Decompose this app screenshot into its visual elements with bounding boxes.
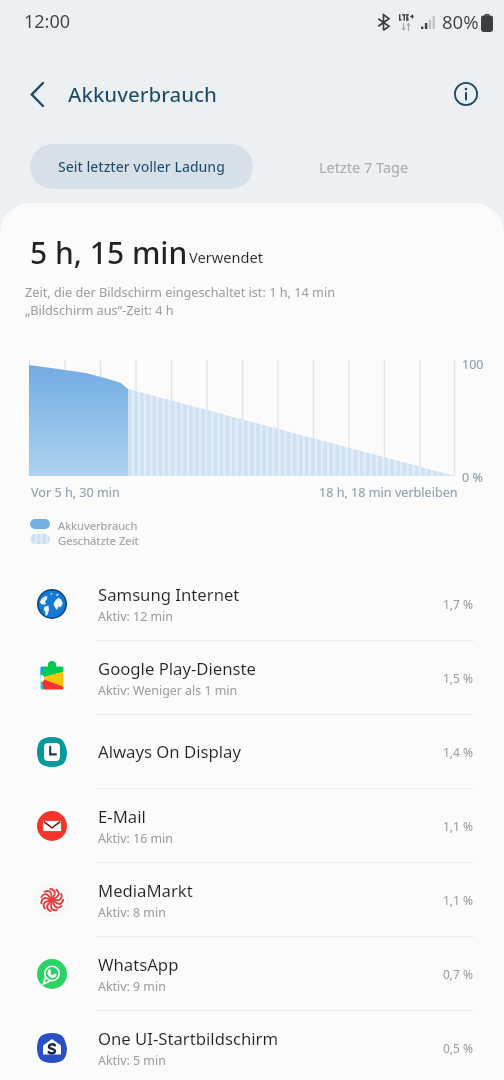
staticText: Google Play-Dienste — [98, 657, 256, 680]
staticText: 1,1 % — [443, 818, 474, 834]
button[interactable]: WhatsApp — [0, 937, 504, 1010]
button[interactable]: Samsung Internet — [0, 567, 504, 640]
staticText: 0,5 % — [443, 1040, 474, 1056]
button[interactable]: MediaMarkt — [0, 863, 504, 936]
staticText: One UI-Startbildschirm — [98, 1027, 279, 1050]
staticText: E-Mail — [98, 805, 146, 828]
staticText: Aktiv: 5 min — [98, 1052, 166, 1069]
staticText: 1,1 % — [443, 892, 474, 908]
staticText: 1,4 % — [443, 744, 474, 760]
staticText: MediaMarkt — [98, 879, 193, 902]
staticText: „Bildschirm aus“-Zeit: 4 h — [25, 301, 174, 318]
staticText: 18 h, 18 min verbleiben — [319, 484, 458, 501]
staticText: Vor 5 h, 30 min — [31, 484, 120, 501]
staticText: Aktiv: 8 min — [98, 904, 166, 921]
staticText: Aktiv: 16 min — [98, 830, 173, 847]
staticText: Samsung Internet — [98, 583, 240, 606]
staticText: WhatsApp — [98, 953, 179, 976]
staticText: Akkuverbrauch — [68, 80, 217, 108]
staticText: 100 — [462, 356, 484, 373]
button[interactable]: Info — [443, 71, 489, 117]
staticText: Verwendet — [189, 247, 263, 267]
staticText: 0 % — [462, 469, 483, 486]
staticText: 5 h, 15 min — [30, 232, 188, 273]
staticText: Aktiv: Weniger als 1 min — [98, 682, 238, 699]
staticText: Aktiv: 9 min — [98, 978, 166, 995]
button[interactable]: One UI-Startbildschirm — [0, 1011, 504, 1080]
button[interactable]: E-Mail — [0, 789, 504, 862]
button[interactable]: Google Play-Dienste — [0, 641, 504, 714]
staticText: Geschätzte Zeit — [58, 533, 139, 548]
button[interactable]: Seit letzter voller Ladung — [30, 144, 253, 189]
staticText: Zeit, die der Bildschirm eingeschaltet i… — [25, 283, 336, 300]
staticText: 1,5 % — [443, 670, 474, 686]
staticText: Akkuverbrauch — [58, 518, 138, 533]
staticText: 1,7 % — [443, 596, 474, 612]
button[interactable]: Zurück — [13, 70, 61, 118]
staticText: Seit letzter voller Ladung — [58, 157, 225, 176]
button[interactable]: Letzte 7 Tage — [253, 144, 474, 189]
staticText: Letzte 7 Tage — [319, 157, 409, 177]
staticText: 0,7 % — [443, 966, 474, 982]
staticText: Always On Display — [98, 740, 241, 763]
staticText: 12:00 — [24, 9, 71, 34]
staticText: Aktiv: 12 min — [98, 608, 173, 625]
button[interactable]: Always On Display — [0, 715, 504, 788]
staticText: 80% — [442, 9, 479, 34]
